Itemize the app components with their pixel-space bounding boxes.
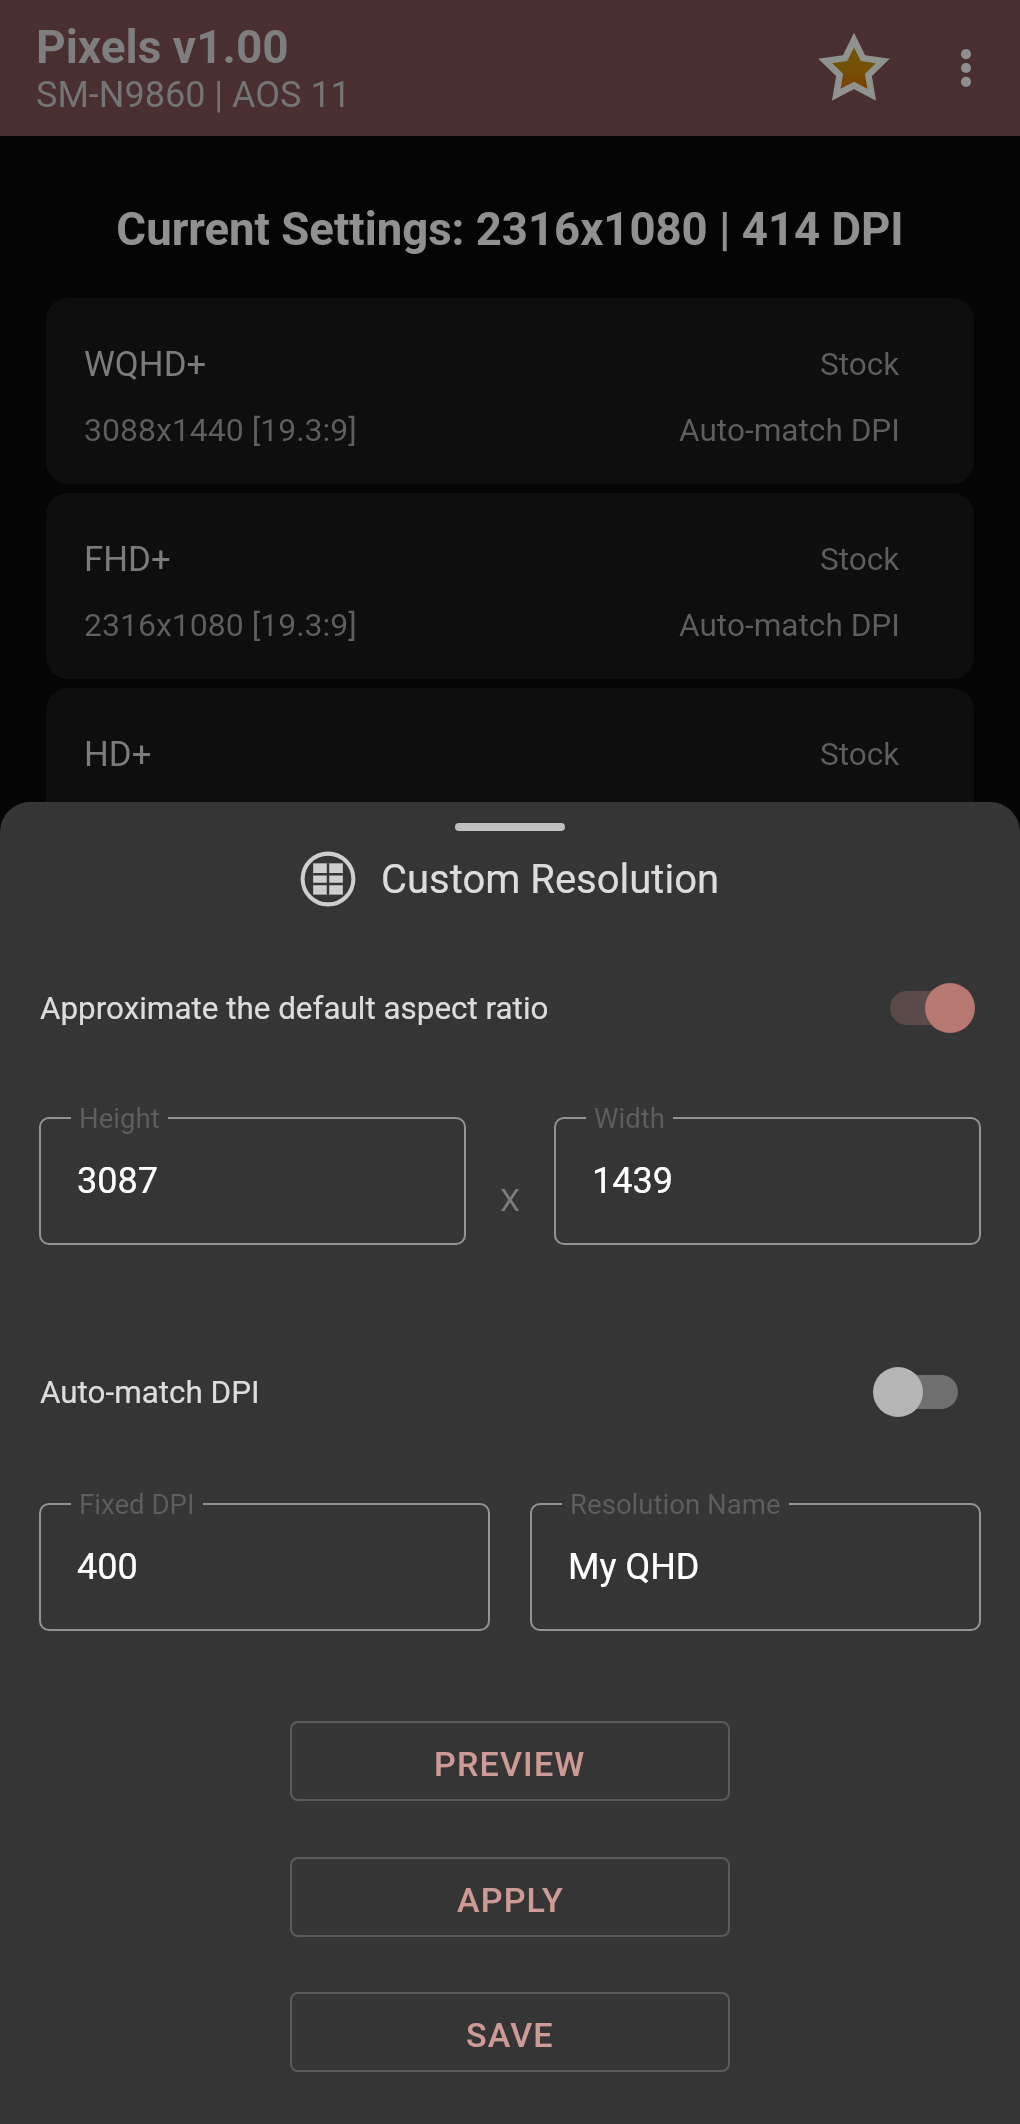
button[interactable]: FHD+ bbox=[46, 493, 974, 679]
button[interactable]: APPLY bbox=[290, 1857, 730, 1937]
staticText: Approximate the default aspect ratio bbox=[40, 990, 873, 1027]
button[interactable]: My QHD bbox=[530, 1503, 981, 1631]
staticText: Stock bbox=[820, 346, 900, 383]
staticText: Width bbox=[594, 1102, 665, 1134]
staticText: Stock bbox=[820, 736, 900, 773]
staticText: Stock bbox=[820, 541, 900, 578]
button[interactable] bbox=[873, 982, 975, 1034]
staticText: Auto-match DPI bbox=[40, 1374, 873, 1411]
staticText: SM-N9860 | AOS 11 bbox=[36, 74, 351, 116]
button[interactable]: Approximate the default aspect ratio bbox=[0, 978, 1020, 1038]
staticText: Resolution Name bbox=[570, 1488, 781, 1520]
staticText: 3088x1440 [19.3:9] bbox=[84, 411, 679, 449]
staticText: Current Settings: 2316x1080 | 414 DPI bbox=[0, 203, 1020, 256]
staticText: Fixed DPI bbox=[79, 1488, 195, 1520]
staticText: Pixels v1.00 bbox=[36, 20, 289, 74]
staticText: 1439 bbox=[592, 1160, 673, 1202]
staticText: Auto-match DPI bbox=[679, 607, 900, 644]
staticText: SAVE bbox=[466, 2015, 554, 2055]
staticText: PREVIEW bbox=[434, 1744, 586, 1784]
button[interactable]: HD+ bbox=[46, 688, 974, 874]
button[interactable]: SAVE bbox=[290, 1992, 730, 2072]
staticText: APPLY bbox=[457, 1880, 564, 1920]
staticText: 2316x1080 [19.3:9] bbox=[84, 606, 679, 644]
button[interactable]: PREVIEW bbox=[290, 1721, 730, 1801]
staticText: My QHD bbox=[568, 1546, 700, 1588]
button[interactable]: 3087 bbox=[39, 1117, 466, 1245]
button[interactable]: Auto-match DPI bbox=[0, 1362, 1020, 1422]
staticText: 1544x720 [19.3:9] bbox=[84, 801, 679, 839]
staticText: X bbox=[500, 1181, 521, 1219]
button[interactable] bbox=[873, 1366, 975, 1418]
staticText: 3087 bbox=[77, 1160, 158, 1202]
button[interactable]: 1439 bbox=[554, 1117, 981, 1245]
button[interactable]: 400 bbox=[39, 1503, 490, 1631]
button[interactable]: WQHD+ bbox=[46, 298, 974, 484]
staticText: WQHD+ bbox=[84, 344, 820, 385]
staticText: FHD+ bbox=[84, 539, 820, 580]
button[interactable]: More options bbox=[932, 34, 1000, 102]
staticText: Auto-match DPI bbox=[679, 412, 900, 449]
button[interactable]: Favorite bbox=[818, 32, 890, 104]
staticText: Height bbox=[79, 1102, 160, 1134]
staticText: HD+ bbox=[84, 734, 820, 775]
staticText: 400 bbox=[77, 1546, 138, 1588]
staticText: Custom Resolution bbox=[381, 856, 720, 903]
